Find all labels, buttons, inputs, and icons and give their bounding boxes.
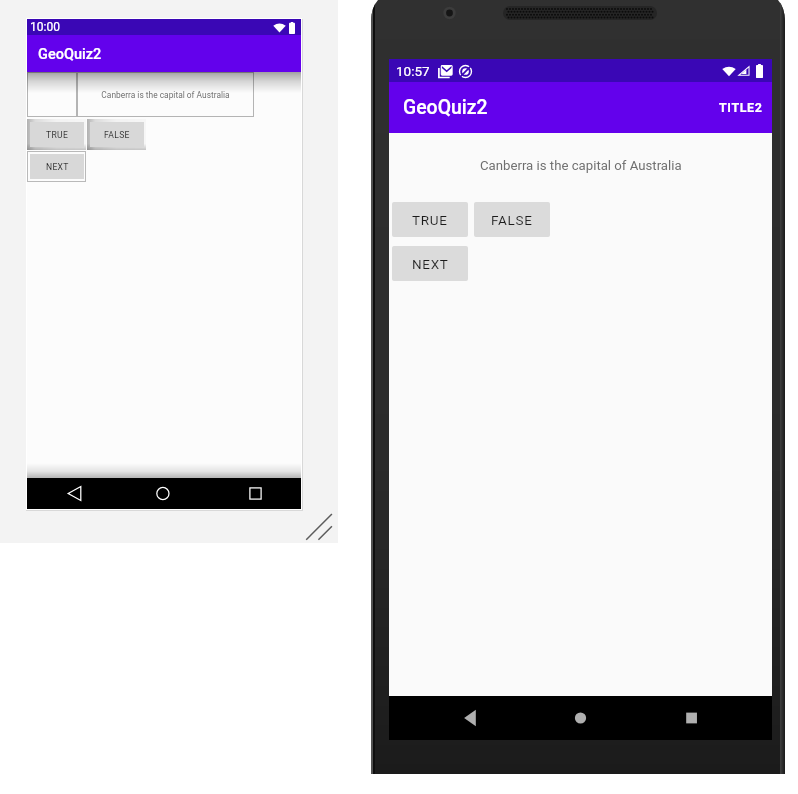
staticText: TITLE2 xyxy=(719,100,763,115)
staticText: Canberra is the capital of Australia xyxy=(480,158,682,173)
button[interactable]: Back xyxy=(454,696,485,740)
staticText: NEXT xyxy=(46,162,69,172)
staticText: FALSE xyxy=(491,212,533,228)
button[interactable]: Home xyxy=(565,696,596,740)
button[interactable]: Back xyxy=(61,478,89,509)
staticText: FALSE xyxy=(104,130,130,140)
button[interactable]: Recents xyxy=(242,478,270,509)
button[interactable]: Recents xyxy=(676,696,707,740)
staticText: NEXT xyxy=(412,256,449,272)
button[interactable]: NEXT xyxy=(30,154,84,179)
staticText: TRUE xyxy=(412,212,448,228)
button[interactable]: TRUE xyxy=(392,202,468,237)
button[interactable]: Home xyxy=(149,478,177,509)
button[interactable]: FALSE xyxy=(90,122,144,147)
staticText: Canberra is the capital of Australia xyxy=(101,90,230,100)
staticText: GeoQuiz2 xyxy=(38,46,102,63)
button[interactable]: NEXT xyxy=(392,246,468,281)
button[interactable]: TRUE xyxy=(30,122,84,147)
staticText: 10:00 xyxy=(30,20,60,34)
staticText: TRUE xyxy=(46,130,69,140)
staticText: 10:57 xyxy=(396,63,430,79)
staticText: GeoQuiz2 xyxy=(403,96,488,119)
button[interactable]: FALSE xyxy=(474,202,550,237)
